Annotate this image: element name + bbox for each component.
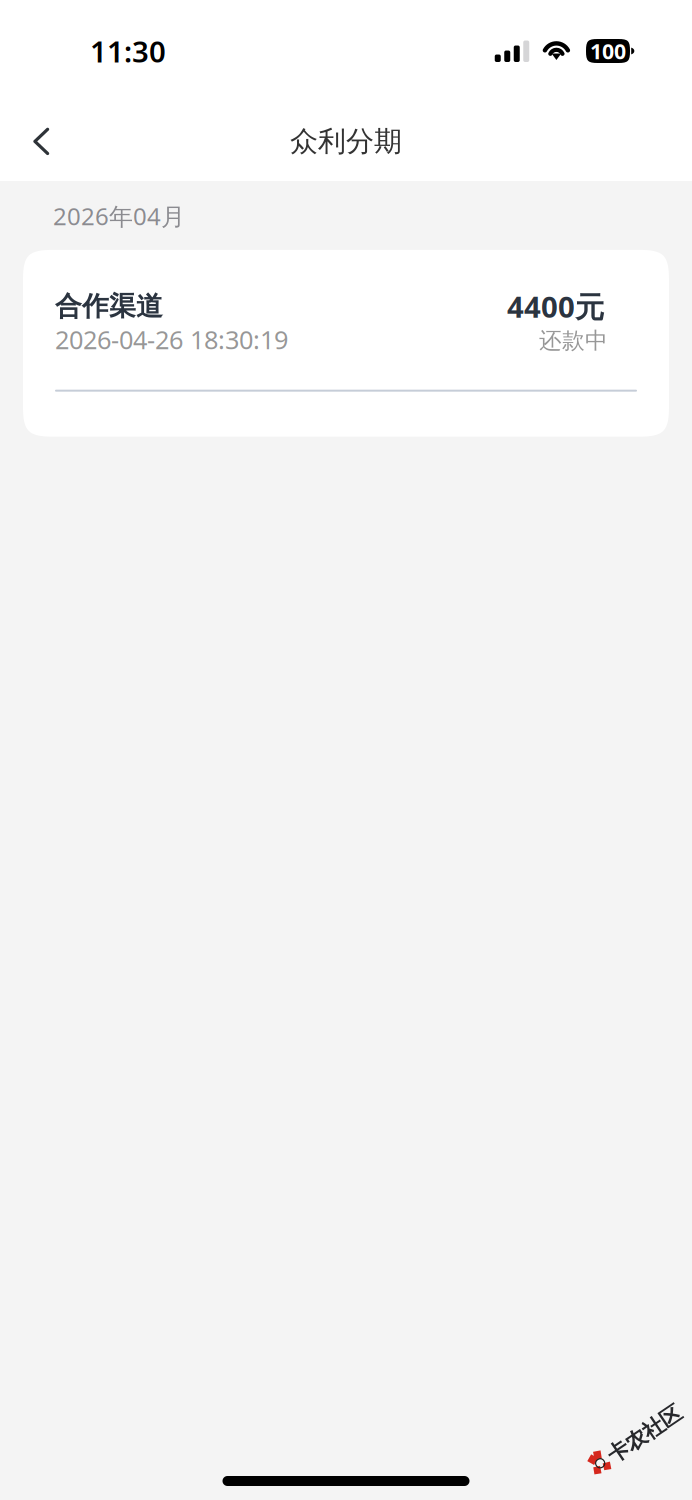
staticText: 卡农社区 bbox=[603, 1427, 687, 1453]
button[interactable]: 合作渠道 bbox=[23, 250, 669, 437]
staticText: 100 bbox=[590, 37, 626, 65]
staticText: 众利分期 bbox=[290, 124, 402, 159]
staticText: 11:30 bbox=[90, 31, 166, 70]
button[interactable]: 返回 bbox=[10, 110, 72, 172]
staticText: 还款中 bbox=[539, 327, 608, 355]
staticText: 2026年04月 bbox=[53, 200, 185, 232]
staticText: 合作渠道 bbox=[55, 290, 163, 323]
staticText: 4400元 bbox=[507, 287, 604, 326]
staticText: 2026-04-26 18:30:19 bbox=[55, 323, 288, 356]
